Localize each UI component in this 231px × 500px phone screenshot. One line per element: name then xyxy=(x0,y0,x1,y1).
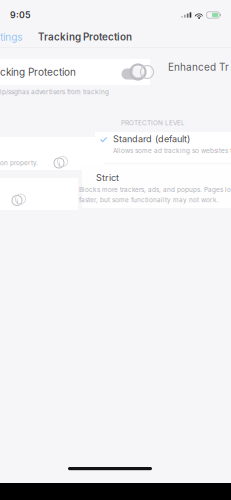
staticText: Allows some ad tracking so websites fun xyxy=(113,147,231,155)
staticText: Tracking Protection xyxy=(38,31,132,43)
staticText: Enhanced Tr xyxy=(168,61,229,73)
staticText: i xyxy=(58,160,60,168)
staticText: tings xyxy=(0,31,22,43)
staticText: lp/ssghas advertisers from tracking xyxy=(0,88,109,96)
staticText: on property. xyxy=(0,159,38,167)
button[interactable]: More info xyxy=(0,178,78,210)
staticText: Strict xyxy=(96,172,119,183)
staticText: cking Protection xyxy=(0,66,76,78)
button[interactable]: Strict xyxy=(74,168,231,206)
button[interactable]: Standard (default) xyxy=(97,128,231,158)
staticText: Blocks more trackers, ads, and popups. P… xyxy=(79,186,231,193)
button[interactable]: cking Protection xyxy=(0,59,150,85)
staticText: 9:05 xyxy=(10,10,31,20)
staticText: faster, but some functionality may not w… xyxy=(79,196,219,204)
button[interactable]: on property. xyxy=(0,137,96,170)
button[interactable]: tings xyxy=(0,29,24,45)
staticText: Standard (default) xyxy=(113,133,190,144)
staticText: PROTECTION LEVEL xyxy=(121,119,185,127)
staticText: i xyxy=(16,198,18,206)
